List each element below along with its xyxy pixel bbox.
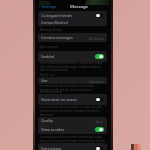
staticText: On screen alerts [40,90,63,94]
staticText: Advanced [40,113,54,117]
staticText: ‹ Settings [39,4,57,9]
button[interactable]: Co-keypad transfer [38,11,107,19]
button[interactable]: ‹ Settings [38,3,58,10]
staticText: Extra option [41,146,62,150]
button[interactable]: Switch on [95,54,104,59]
button[interactable]: Show alerts on screen [38,94,107,105]
staticText: Enabled [41,54,55,59]
staticText: Show as video [41,127,65,132]
staticText: Contact Blocked [41,20,68,25]
staticText: Lorem ipsum dolor sit amet consectetur a… [40,61,102,72]
staticText: Co-keypad transfer [41,13,73,18]
staticText: Sync options [40,45,58,49]
staticText: Lorem ipsum dolor sit amet consectetur a… [40,84,95,92]
staticText: Show alerts on screen [41,97,77,102]
staticText: Lorem ipsum dolor consectetur adipiscing… [40,105,103,113]
button[interactable]: Switch off [95,146,104,150]
button[interactable]: Extra option [38,143,107,150]
staticText: Size [41,78,48,83]
button[interactable]: Contact Blocked [38,19,107,26]
staticText: Media size [40,73,55,77]
button[interactable]: Switch on [95,127,104,132]
button[interactable]: Switch off [95,13,104,18]
staticText: Message [70,4,88,10]
button[interactable]: Quality [38,117,107,124]
staticText: All details [89,36,104,40]
button[interactable]: Enabled [38,51,107,62]
button[interactable]: Contacts messages [38,33,107,42]
staticText: Auto [96,119,104,123]
staticText: Quality [41,118,53,123]
staticText: Lorem ipsum dolor sit amet consectetur a… [40,135,105,146]
staticText: Contacts messages [41,35,73,40]
button[interactable]: Switch off [95,97,104,102]
button[interactable]: Size [38,77,107,84]
button[interactable]: Show as video [38,124,107,134]
staticText: Message history [40,28,63,32]
staticText: Standard [89,79,104,83]
